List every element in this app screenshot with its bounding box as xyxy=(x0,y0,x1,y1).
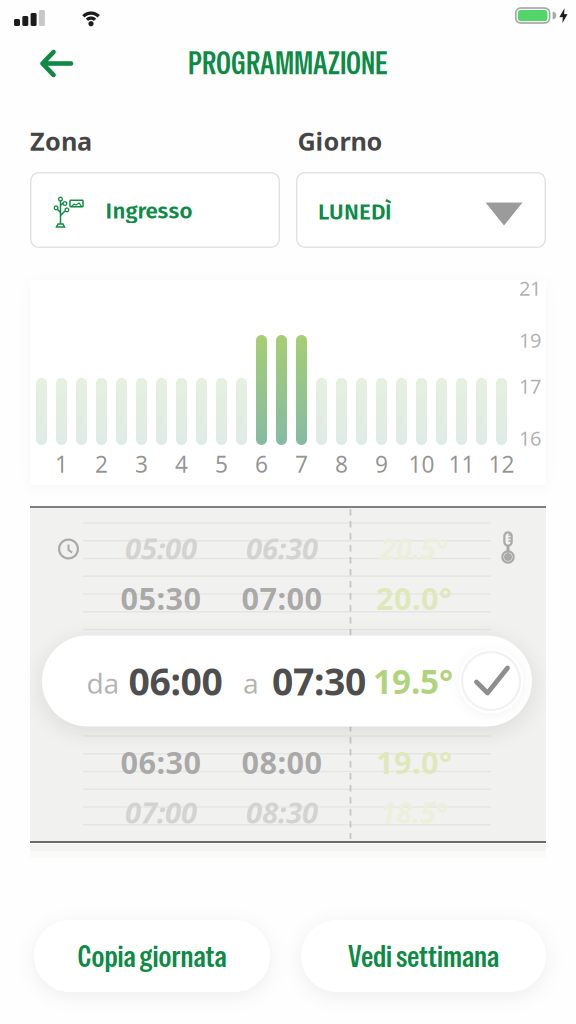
staticText: 07:00 xyxy=(241,578,322,618)
staticText: 7 xyxy=(295,449,308,479)
button[interactable]: Back xyxy=(28,38,85,89)
staticText: 1 xyxy=(55,449,68,479)
staticText: Vedi settimana xyxy=(348,936,499,976)
staticText: 20.5° xyxy=(380,528,448,567)
staticText: 07:00 xyxy=(125,792,197,831)
staticText: 21 xyxy=(519,275,541,301)
staticText: 9 xyxy=(375,449,388,479)
staticText: 3 xyxy=(135,449,148,479)
staticText: 12 xyxy=(488,449,514,479)
staticText: PROGRAMMAZIONE xyxy=(188,42,388,84)
staticText: 8 xyxy=(335,449,348,479)
staticText: 06:30 xyxy=(246,528,318,567)
staticText: Ingresso xyxy=(105,198,192,224)
staticText: a xyxy=(243,664,259,702)
staticText: LUNEDÌ xyxy=(318,199,392,225)
staticText: 05:00 xyxy=(125,528,197,567)
staticText: 5 xyxy=(215,449,228,479)
staticText: 08:00 xyxy=(241,742,322,782)
staticText: 18.5° xyxy=(380,792,448,831)
staticText: 17 xyxy=(519,373,541,399)
staticText: 16 xyxy=(519,425,541,451)
staticText: 06:00 xyxy=(128,656,222,706)
staticText: Zona xyxy=(30,124,92,158)
button[interactable]: Ingresso xyxy=(30,172,280,248)
staticText: Giorno xyxy=(297,124,382,158)
staticText: 11 xyxy=(448,449,474,479)
staticText: 19 xyxy=(519,327,541,353)
staticText: 07:30 xyxy=(272,656,366,706)
staticText: 06:30 xyxy=(120,742,201,782)
staticText: 05:30 xyxy=(120,578,201,618)
staticText: 19.5° xyxy=(373,659,453,703)
staticText: Copia giornata xyxy=(77,936,226,976)
staticText: 2 xyxy=(95,449,108,479)
button[interactable]: LUNEDÌ xyxy=(296,172,546,248)
staticText: 08:30 xyxy=(246,792,318,831)
staticText: 6 xyxy=(255,449,268,479)
staticText: 4 xyxy=(175,449,188,479)
staticText: 10 xyxy=(408,449,434,479)
staticText: 20.0° xyxy=(376,578,452,618)
staticText: 19.0° xyxy=(376,742,452,782)
button[interactable]: Copia giornata xyxy=(34,920,270,992)
button[interactable]: Confirm xyxy=(458,648,523,713)
staticText: da xyxy=(86,664,119,702)
button[interactable]: Vedi settimana xyxy=(301,920,546,992)
